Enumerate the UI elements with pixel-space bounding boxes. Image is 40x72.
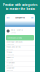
staticText: Numbers — [6, 61, 15, 64]
button[interactable]: Food and drink — [5, 46, 35, 51]
staticText: Everyday phrases — [6, 40, 22, 43]
staticText: Level 3 — [11, 31, 16, 34]
staticText: Family — [6, 56, 13, 58]
staticText: Back — [6, 16, 10, 19]
staticText: to master the basics — [5, 7, 34, 11]
staticText: Travel — [6, 51, 12, 53]
button[interactable]: Family — [5, 56, 35, 61]
staticText: Edit — [31, 16, 34, 19]
staticText: 9 lessons — [6, 48, 13, 51]
button[interactable]: Edit — [31, 16, 34, 19]
button[interactable]: Back — [6, 16, 10, 19]
staticText: Categories — [15, 16, 25, 19]
staticText: 8 lessons — [6, 59, 13, 61]
button[interactable]: Numbers — [5, 61, 35, 66]
staticText: Food and drink — [6, 45, 20, 48]
button[interactable]: Continue practicing — [6, 35, 34, 40]
staticText: 7 lessons — [6, 69, 13, 71]
staticText: 6 lessons — [6, 64, 13, 66]
button[interactable]: Travel — [5, 51, 35, 56]
button[interactable]: Weather — [5, 66, 35, 72]
button[interactable]: Everyday phrases — [5, 40, 35, 46]
staticText: 14 lessons — [6, 54, 14, 56]
staticText: Hola, Maria — [11, 28, 23, 31]
staticText: 12 lessons — [6, 43, 14, 45]
staticText: Weather — [6, 66, 14, 69]
staticText: Continue practicing — [7, 36, 22, 39]
staticText: Practice with categories — [3, 3, 37, 7]
